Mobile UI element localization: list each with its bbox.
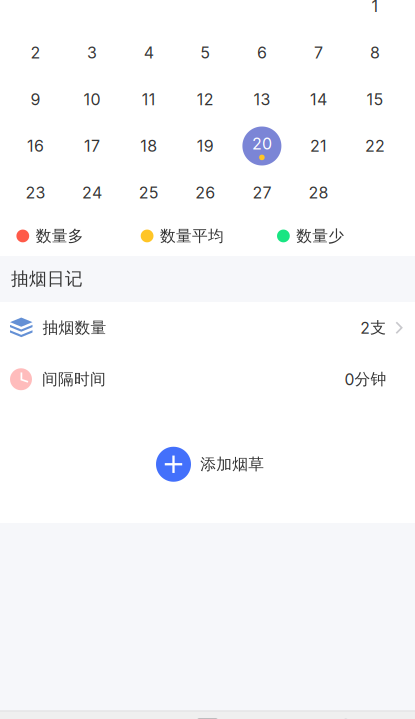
staticText: 16 [27,136,44,156]
staticText: 数量多 [36,226,84,246]
staticText: 7 [314,43,323,62]
staticText: 数量少 [296,226,344,246]
staticText: 21 [310,136,327,156]
button[interactable]: 25 [120,169,177,216]
button[interactable]: 8 [347,29,403,76]
button[interactable]: 13 [234,76,290,123]
staticText: 0分钟 [344,369,386,389]
staticText: 6 [257,43,267,62]
staticText: 20 [252,134,272,153]
button[interactable]: 19 [177,123,234,169]
button[interactable]: 24 [64,169,120,216]
button[interactable]: 9 [7,76,64,123]
button[interactable]: 22 [347,123,403,169]
button[interactable]: 10 [64,76,120,123]
button[interactable]: 抽烟数量 [0,302,415,353]
button[interactable]: 6 [234,29,290,76]
button[interactable]: 11 [120,76,177,123]
button[interactable]: 18 [120,123,177,169]
button[interactable]: 14 [290,76,347,123]
staticText: 间隔时间 [42,369,106,389]
staticText: 2支 [360,318,386,338]
staticText: 14 [310,90,327,109]
staticText: 18 [140,136,157,156]
button[interactable]: 5 [177,29,234,76]
staticText: 10 [84,90,101,109]
button[interactable]: 统计 [138,717,277,719]
staticText: 4 [144,43,154,62]
button[interactable]: 间隔时间 [0,353,415,405]
button[interactable]: 7 [290,29,347,76]
staticText: 27 [252,183,271,202]
button[interactable]: 20 [234,123,290,169]
button[interactable]: 1 [347,0,403,29]
staticText: 9 [30,90,40,109]
button[interactable]: 15 [347,76,403,123]
button[interactable]: 4 [120,29,177,76]
staticText: 1 [372,0,379,16]
staticText: 添加烟草 [200,454,264,474]
button[interactable]: 21 [290,123,347,169]
staticText: 3 [87,43,97,62]
staticText: 11 [142,90,156,109]
staticText: 25 [139,183,159,202]
staticText: 22 [365,136,385,156]
button[interactable]: 12 [177,76,234,123]
button[interactable]: 16 [7,123,64,169]
button[interactable]: 3 [64,29,120,76]
staticText: 17 [84,136,100,156]
button[interactable]: 2 [7,29,64,76]
staticText: 19 [197,136,214,156]
button[interactable]: 28 [290,169,347,216]
button[interactable]: 添加烟草 [0,405,415,523]
staticText: 28 [308,183,328,202]
button[interactable]: 23 [7,169,64,216]
staticText: 23 [25,183,45,202]
staticText: 26 [195,183,215,202]
staticText: 15 [367,90,384,109]
staticText: 24 [82,183,102,202]
staticText: 抽烟数量 [42,318,106,338]
staticText: 12 [197,90,214,109]
staticText: 2 [30,43,40,62]
staticText: 抽烟日记 [11,268,83,290]
staticText: 8 [370,43,380,62]
button[interactable]: 17 [64,123,120,169]
button[interactable]: 26 [177,169,234,216]
staticText: 5 [200,43,210,62]
staticText: 13 [253,90,270,109]
staticText: 数量平均 [160,226,224,246]
button[interactable]: 27 [234,169,290,216]
